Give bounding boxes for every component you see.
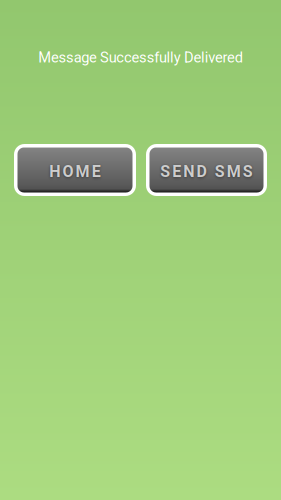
button[interactable]: SEND SMS [146,144,267,196]
staticText: HOME [49,162,101,181]
staticText: Message Successfully Delivered [38,49,243,66]
button[interactable]: HOME [14,144,136,196]
staticText: SEND SMS [160,162,253,181]
